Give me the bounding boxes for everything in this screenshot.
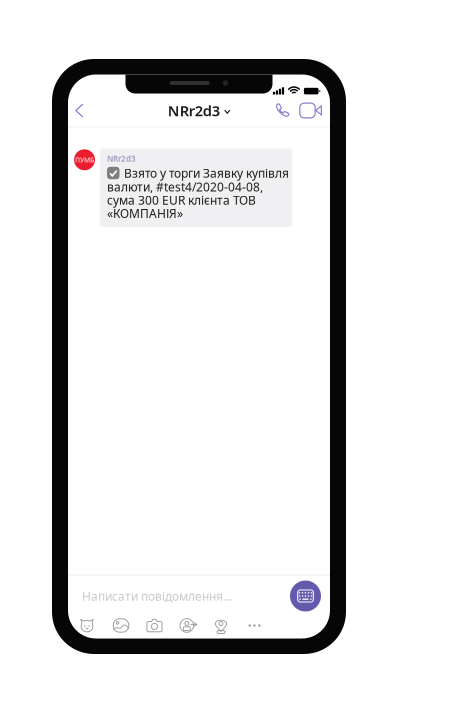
staticText: валюти, #test4/2020-04-08, — [107, 179, 263, 195]
button[interactable]: Video call — [294, 95, 321, 125]
staticText: Написати повідомлення... — [82, 588, 232, 604]
button[interactable]: NRr2d3 — [168, 95, 230, 125]
staticText: «КОМПАНІЯ» — [107, 205, 183, 221]
button[interactable]: Back — [68, 95, 90, 125]
button[interactable]: Send location — [206, 616, 236, 634]
button[interactable]: Call — [270, 95, 294, 125]
button[interactable]: Stickers — [70, 616, 104, 634]
button[interactable]: More options — [236, 616, 273, 634]
staticText: сума 300 EUR клієнта ТОВ — [107, 192, 256, 208]
staticText: ПУМБ — [75, 155, 94, 164]
button[interactable]: Keyboard — [290, 580, 321, 611]
button[interactable]: Gallery — [104, 616, 138, 634]
staticText: Взято у торги Заявку купівля — [124, 165, 289, 181]
button[interactable]: Send contact — [171, 616, 206, 634]
button[interactable]: Camera — [138, 616, 171, 634]
staticText: NRr2d3 — [107, 153, 136, 164]
staticText: NRr2d3 — [168, 101, 220, 120]
